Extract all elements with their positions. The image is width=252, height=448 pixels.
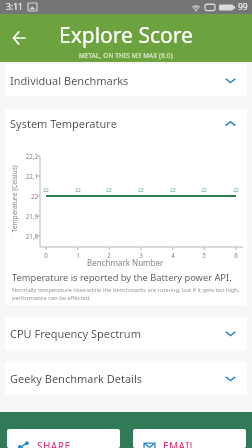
staticText: 1	[71, 251, 85, 259]
button[interactable]: SHARE	[7, 429, 120, 448]
staticText: 99	[238, 1, 248, 13]
staticText: 4	[166, 251, 180, 259]
staticText: EMAIL	[163, 439, 196, 448]
button[interactable]: System Temperature	[5, 109, 247, 138]
staticText: SHARE	[37, 439, 71, 448]
staticText: 22	[17, 192, 38, 200]
staticText: 2	[102, 251, 116, 259]
staticText: 22,1	[17, 172, 38, 180]
staticText: 5	[197, 251, 211, 259]
staticText: Normally temperature rises while the ben…	[12, 286, 240, 294]
button[interactable]: EMAIL	[133, 429, 246, 448]
staticText: 3	[134, 251, 148, 259]
staticText: 21,8	[17, 232, 38, 240]
staticText: 6	[229, 251, 243, 259]
staticText: 0	[39, 251, 53, 259]
staticText: 22	[166, 187, 180, 194]
button[interactable]: CPU Frequency Spectrum	[5, 317, 247, 350]
staticText: 22,2	[17, 152, 38, 160]
button[interactable]: Individual Benchmarks	[5, 64, 247, 96]
staticText: 22	[71, 187, 85, 194]
staticText: CPU Frequency Spectrum	[10, 326, 141, 341]
staticText: Temperature is reported by the Battery p…	[12, 271, 232, 284]
staticText: Individual Benchmarks	[10, 73, 129, 88]
staticText: 22	[229, 187, 243, 194]
staticText: Explore Score	[59, 21, 193, 50]
staticText: Benchmark Number	[87, 257, 164, 268]
staticText: METAL, ON THIS M3 MAX (6.0)	[79, 51, 173, 60]
staticText: 22	[102, 187, 116, 194]
staticText: 22	[134, 187, 148, 194]
staticText: Temperature (Celsius)	[9, 164, 18, 232]
staticText: 22	[197, 187, 211, 194]
staticText: 3:11	[6, 1, 23, 13]
button[interactable]: Geeky Benchmark Details	[5, 362, 247, 395]
button[interactable]: Back	[7, 26, 31, 50]
staticText: 21,9	[17, 212, 38, 220]
staticText: performance can be affected.	[12, 294, 91, 302]
staticText: 22	[39, 187, 53, 194]
staticText: Geeky Benchmark Details	[10, 371, 143, 386]
staticText: System Temperature	[10, 116, 117, 131]
